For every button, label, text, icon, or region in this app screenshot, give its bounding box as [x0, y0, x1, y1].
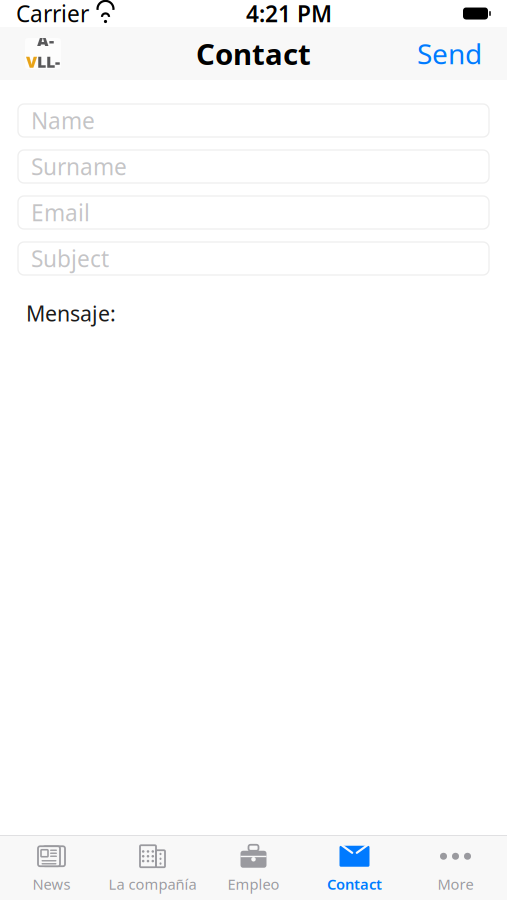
button[interactable]: Contact	[304, 836, 405, 900]
button[interactable]: Email	[18, 196, 489, 229]
button[interactable]: Oro Valle home	[25, 38, 61, 69]
staticText: Contact	[327, 874, 382, 894]
button[interactable]: La compañía	[102, 836, 203, 900]
button[interactable]: News	[1, 836, 102, 900]
staticText: V	[26, 51, 37, 72]
button[interactable]: Surname	[18, 150, 489, 183]
staticText: ORO	[29, 14, 57, 30]
staticText: Email	[31, 197, 90, 227]
staticText: Subject	[31, 243, 109, 273]
staticText: News	[32, 874, 70, 894]
staticText: More	[437, 874, 473, 894]
staticText: La compañía	[108, 874, 196, 894]
staticText: Empleo	[227, 874, 279, 894]
staticText: 4:21 PM	[246, 0, 332, 28]
staticText: ALLE	[37, 30, 60, 93]
staticText: Surname	[31, 151, 127, 181]
button[interactable]: Name	[18, 104, 489, 137]
button[interactable]: Subject	[18, 242, 489, 275]
button[interactable]: Send	[417, 35, 482, 72]
staticText: Mensaje:	[26, 299, 116, 327]
staticText: Contact	[196, 34, 311, 73]
staticText: Carrier	[16, 0, 89, 28]
staticText: Send	[417, 35, 482, 72]
button[interactable]: More	[405, 836, 506, 900]
button[interactable]: Empleo	[203, 836, 304, 900]
staticText: Name	[31, 105, 95, 135]
